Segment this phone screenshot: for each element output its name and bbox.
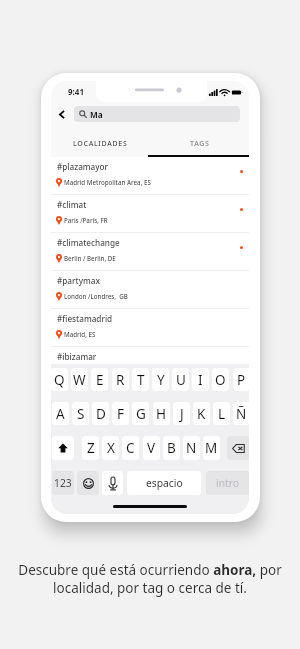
staticText: K	[197, 405, 206, 423]
staticText: J	[180, 405, 184, 423]
button[interactable]: Y	[152, 368, 169, 391]
button[interactable]: C	[122, 436, 139, 460]
button[interactable]: Backspace	[227, 436, 249, 460]
staticText: Madrid, ES	[64, 330, 96, 338]
staticText: H	[156, 405, 167, 423]
button[interactable]: E	[91, 368, 108, 391]
button[interactable]: K	[193, 402, 210, 425]
staticText: F	[117, 405, 125, 423]
staticText: Ñ	[236, 405, 247, 423]
staticText: N	[186, 439, 197, 457]
button[interactable]: espacio	[127, 471, 201, 495]
staticText: I	[198, 371, 203, 389]
staticText: espacio	[146, 476, 183, 490]
button[interactable]: D	[92, 402, 109, 425]
staticText: Z	[87, 439, 95, 457]
staticText: #partymax	[57, 275, 100, 286]
button[interactable]: I	[192, 368, 209, 391]
button[interactable]: Q	[51, 368, 68, 391]
button[interactable]: Ma	[74, 106, 240, 122]
staticText: #climatechange	[57, 237, 120, 248]
button[interactable]: #plazamayor	[51, 157, 249, 195]
button[interactable]: 123	[52, 471, 74, 495]
staticText: B	[167, 439, 176, 457]
staticText: W	[73, 371, 86, 389]
button[interactable]: F	[112, 402, 129, 425]
staticText: Berlin / Berlin, DE	[64, 254, 116, 262]
staticText: E	[96, 371, 104, 389]
staticText: C	[126, 439, 135, 457]
staticText: 123	[54, 476, 72, 490]
button[interactable]: intro	[206, 471, 249, 495]
staticText: #fiestamadrid	[57, 313, 113, 324]
button[interactable]: Z	[82, 436, 99, 460]
staticText: T	[137, 371, 145, 389]
button[interactable]: Back	[51, 103, 73, 125]
staticText: TAGS	[190, 139, 210, 149]
staticText: V	[147, 439, 156, 457]
button[interactable]: TAGS	[150, 130, 249, 157]
staticText: #plazamayor	[57, 161, 109, 172]
button[interactable]: #climat	[51, 195, 249, 233]
staticText: #climat	[57, 199, 87, 210]
staticText: intro	[216, 476, 240, 490]
staticText: P	[237, 371, 246, 389]
button[interactable]: M	[203, 436, 220, 460]
staticText: Ma	[90, 109, 103, 120]
staticText: S	[77, 405, 85, 423]
button[interactable]: P	[233, 368, 249, 391]
button[interactable]: S	[72, 402, 89, 425]
button[interactable]: LOCALIDADES	[51, 130, 150, 157]
staticText: U	[176, 371, 186, 389]
staticText: A	[56, 405, 65, 423]
staticText: D	[96, 405, 106, 423]
button[interactable]: Dictation	[102, 471, 123, 495]
button[interactable]: Emoji	[77, 471, 99, 495]
staticText: Madrid Metropolitan Area, ES	[64, 178, 151, 186]
staticText: London /Londres, GB	[64, 292, 128, 300]
button[interactable]: #climatechange	[51, 233, 249, 271]
button[interactable]: R	[112, 368, 129, 391]
staticText: L	[218, 405, 226, 423]
button[interactable]: J	[173, 402, 190, 425]
button[interactable]: U	[172, 368, 189, 391]
button[interactable]: B	[163, 436, 180, 460]
button[interactable]: #fiestamadrid	[51, 309, 249, 347]
button[interactable]: N	[183, 436, 200, 460]
button[interactable]: A	[52, 402, 69, 425]
staticText: LOCALIDADES	[73, 139, 128, 149]
button[interactable]: G	[132, 402, 149, 425]
staticText: X	[107, 439, 115, 457]
button[interactable]: Shift	[52, 436, 74, 460]
button[interactable]: Ñ	[233, 402, 249, 425]
staticText: Paris /Paris, FR	[64, 216, 108, 224]
staticText: 9:41	[68, 86, 84, 97]
button[interactable]: W	[71, 368, 88, 391]
staticText: Y	[157, 371, 165, 389]
staticText: R	[116, 371, 125, 389]
staticText: M	[205, 439, 218, 457]
staticText: Q	[54, 371, 65, 389]
staticText: #ibizamar	[57, 351, 97, 362]
button[interactable]: T	[132, 368, 149, 391]
button[interactable]: L	[213, 402, 230, 425]
button[interactable]: O	[212, 368, 229, 391]
staticText: Descubre qué está ocurriendo ahora, por …	[17, 561, 283, 597]
button[interactable]: H	[153, 402, 170, 425]
button[interactable]: V	[143, 436, 160, 460]
staticText: O	[215, 371, 226, 389]
button[interactable]: #partymax	[51, 271, 249, 309]
staticText: G	[136, 405, 146, 423]
button[interactable]: X	[102, 436, 119, 460]
